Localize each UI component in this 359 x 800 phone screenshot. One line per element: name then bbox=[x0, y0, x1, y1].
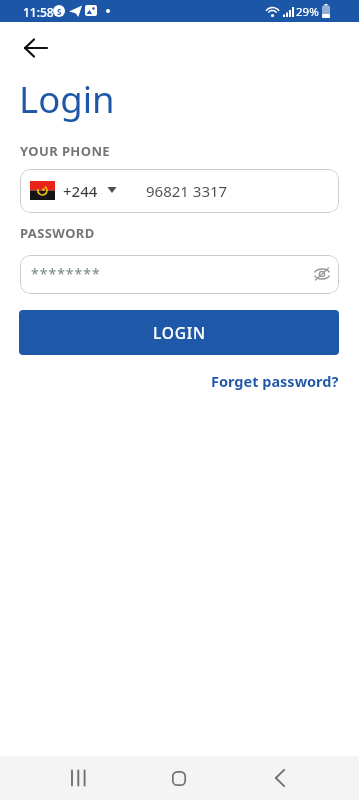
button[interactable] bbox=[159, 758, 199, 798]
staticText: PASSWORD bbox=[20, 224, 95, 242]
button[interactable] bbox=[16, 30, 56, 66]
staticText: S bbox=[57, 6, 62, 17]
staticText: LOGIN bbox=[153, 322, 206, 343]
staticText: 96821 3317 bbox=[146, 181, 228, 201]
staticText: +244 bbox=[63, 181, 98, 201]
staticText: YOUR PHONE bbox=[20, 142, 111, 160]
staticText: 29% bbox=[296, 4, 319, 20]
button[interactable] bbox=[58, 758, 98, 798]
staticText: Login bbox=[19, 74, 115, 124]
button[interactable] bbox=[260, 758, 300, 798]
staticText: ******** bbox=[31, 264, 101, 283]
button[interactable]: LOGIN bbox=[19, 310, 339, 355]
button[interactable]: ******** bbox=[20, 255, 339, 294]
button[interactable]: +244 bbox=[20, 169, 339, 213]
staticText: 11:58 bbox=[23, 4, 54, 20]
button[interactable]: Forget password? bbox=[211, 371, 339, 391]
